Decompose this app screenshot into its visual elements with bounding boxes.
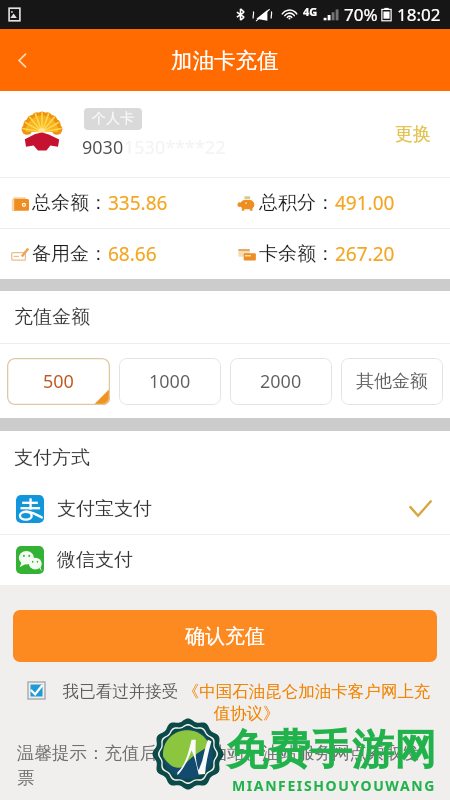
button[interactable]: 500 [7,358,110,405]
staticText: 9030 [82,135,124,160]
staticText: 68.66 [108,241,157,267]
staticText: 1530****22 [124,135,226,160]
staticText: 我已看过并接受 《中国石油昆仑加油卡客户网上充值协议》 [55,679,438,724]
staticText: 支付方式 [14,446,90,470]
button[interactable]: 个人卡 [0,91,450,177]
staticText: 其他金额 [356,370,428,393]
staticText: ： [316,242,335,266]
button[interactable]: 微信支付 [0,535,450,585]
staticText: 个人卡 [92,110,134,128]
staticText: 加油卡充值 [171,47,279,74]
staticText: ： [89,242,108,266]
staticText: 2000 [260,369,302,394]
staticText: 500 [43,369,74,394]
staticText: 4G [303,4,318,19]
staticText: ： [316,191,335,215]
staticText: 70% [344,3,378,26]
staticText: 免费手游网 [226,724,436,777]
staticText: 备用金 [32,242,89,266]
staticText: 更换 [395,123,431,146]
staticText: 卡余额 [259,242,316,266]
button[interactable]: 其他金额 [341,358,443,405]
staticText: 491.00 [335,190,395,216]
staticText: ： [89,191,108,215]
staticText: 335.86 [108,190,168,216]
staticText: MIANFEISHOUYOUWANG [232,776,436,795]
staticText: 267.20 [335,241,395,267]
staticText: 总余额 [32,191,89,215]
button[interactable]: 确认充值 [13,610,437,662]
button[interactable]: 1000 [119,358,221,405]
staticText: 确认充值 [185,624,265,649]
staticText: 总积分 [259,191,316,215]
button[interactable]: Back [0,29,44,91]
staticText: 1000 [149,369,191,394]
staticText: 支付宝支付 [57,497,152,521]
button[interactable]: 2000 [230,358,332,405]
button[interactable]: 更换 [395,91,431,177]
staticText: 18:02 [397,3,441,26]
staticText: 充值金额 [14,305,90,329]
staticText: 温馨提示：充值后可在加油站、油站服务网点索取发票 [17,742,434,790]
staticText: 微信支付 [57,548,133,572]
button[interactable]: 支付宝支付 [0,484,450,534]
